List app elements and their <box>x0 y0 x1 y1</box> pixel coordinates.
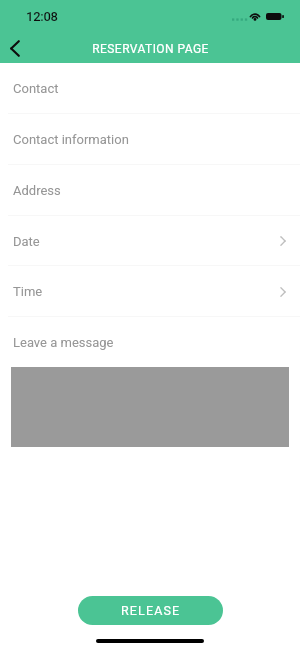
button[interactable]: Date <box>0 216 300 266</box>
staticText: Contact <box>13 81 59 96</box>
staticText: Date <box>13 234 40 249</box>
staticText: Time <box>13 284 43 299</box>
staticText: Address <box>13 183 61 198</box>
button[interactable]: Back <box>2 32 28 64</box>
staticText: 12:08 <box>26 9 58 24</box>
staticText: Leave a message <box>13 335 114 350</box>
button[interactable]: Time <box>0 266 300 317</box>
staticText: RELEASE <box>121 603 181 618</box>
staticText: Contact information <box>13 132 129 147</box>
button[interactable]: RELEASE <box>78 596 223 625</box>
staticText: RESERVATION PAGE <box>92 42 209 56</box>
button[interactable]: Address <box>0 165 300 216</box>
button[interactable]: Contact <box>0 63 300 114</box>
button[interactable]: Contact information <box>0 114 300 165</box>
